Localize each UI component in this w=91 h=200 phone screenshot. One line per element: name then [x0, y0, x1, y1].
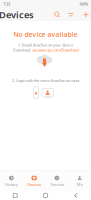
button[interactable]: Search	[52, 9, 63, 20]
button[interactable]: Recents	[0, 191, 30, 200]
button[interactable]: Me	[68, 170, 91, 191]
staticText: Download:	[13, 47, 31, 53]
staticText: aw.aweray.com/Download	[32, 47, 78, 53]
staticText: Devices	[27, 182, 41, 187]
staticText: 7:33	[3, 1, 10, 7]
staticText: Session	[50, 182, 63, 187]
staticText: 100%	[79, 1, 88, 7]
button[interactable]: Add device	[80, 9, 91, 20]
staticText: Me	[77, 182, 83, 187]
staticText: 1. Install AweSun on your device	[18, 42, 73, 48]
staticText: Devices	[0, 8, 34, 21]
button[interactable]: Session	[45, 170, 68, 191]
button[interactable]: Sort	[65, 9, 76, 20]
staticText: 2. Login with the same AweSun account	[12, 78, 79, 83]
staticText: History	[5, 182, 18, 187]
button[interactable]: Home	[30, 191, 61, 200]
button[interactable]: Devices	[23, 170, 46, 191]
staticText: No device available	[13, 30, 77, 39]
button[interactable]: History	[0, 170, 23, 191]
button[interactable]: Back	[61, 191, 91, 200]
